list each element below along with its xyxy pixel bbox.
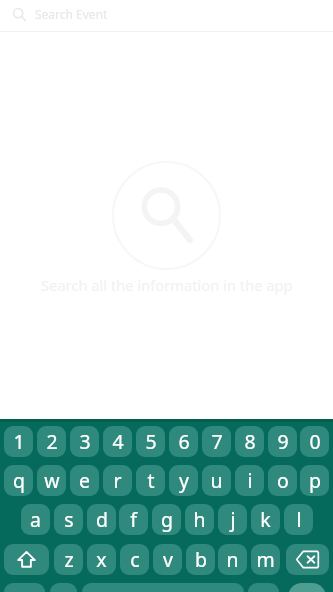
- staticText: 3: [79, 428, 91, 455]
- staticText: q: [13, 467, 25, 494]
- button[interactable]: m: [251, 544, 280, 575]
- staticText: h: [193, 506, 206, 533]
- button[interactable]: b: [186, 544, 215, 575]
- staticText: c: [130, 546, 140, 573]
- button[interactable]: u: [202, 465, 231, 496]
- staticText: p: [309, 467, 321, 494]
- button[interactable]: 8: [235, 426, 264, 457]
- staticText: y: [179, 467, 189, 494]
- button[interactable]: 6: [169, 426, 198, 457]
- staticText: t: [147, 467, 155, 494]
- staticText: 0: [309, 428, 321, 455]
- button[interactable]: Space: [82, 583, 244, 592]
- button[interactable]: l: [284, 504, 313, 535]
- button[interactable]: c: [120, 544, 149, 575]
- button[interactable]: t: [136, 465, 165, 496]
- staticText: 5: [145, 428, 157, 455]
- staticText: 9: [277, 428, 289, 455]
- staticText: 6: [178, 428, 190, 455]
- staticText: v: [163, 546, 173, 573]
- button[interactable]: y: [169, 465, 198, 496]
- staticText: Search all the information in the app: [41, 275, 293, 295]
- button[interactable]: v: [153, 544, 182, 575]
- button[interactable]: Shift: [4, 544, 49, 575]
- staticText: g: [161, 506, 173, 533]
- button[interactable]: k: [251, 504, 280, 535]
- button[interactable]: 4: [103, 426, 132, 457]
- button[interactable]: r: [103, 465, 132, 496]
- button[interactable]: g: [152, 504, 181, 535]
- staticText: m: [256, 546, 275, 573]
- staticText: s: [64, 506, 74, 533]
- staticText: z: [64, 546, 74, 573]
- staticText: u: [210, 467, 223, 494]
- staticText: i: [247, 467, 253, 494]
- button[interactable]: 3: [70, 426, 99, 457]
- button[interactable]: 5: [136, 426, 165, 457]
- staticText: a: [30, 506, 41, 533]
- button[interactable]: x: [87, 544, 116, 575]
- staticText: d: [96, 506, 108, 533]
- staticText: o: [277, 467, 289, 494]
- staticText: 7: [211, 428, 223, 455]
- button[interactable]: 9: [268, 426, 297, 457]
- button[interactable]: 0: [300, 426, 329, 457]
- staticText: l: [296, 506, 302, 533]
- staticText: w: [44, 467, 60, 494]
- button[interactable]: 1: [4, 426, 33, 457]
- button[interactable]: Search Event: [0, 0, 333, 27]
- button[interactable]: w: [37, 465, 66, 496]
- button[interactable]: e: [70, 465, 99, 496]
- button[interactable]: i: [235, 465, 264, 496]
- button[interactable]: d: [87, 504, 116, 535]
- staticText: x: [96, 546, 107, 573]
- button[interactable]: f: [119, 504, 148, 535]
- staticText: b: [195, 546, 207, 573]
- button[interactable]: a: [21, 504, 50, 535]
- staticText: 4: [112, 428, 124, 455]
- button[interactable]: Emoji: [50, 583, 77, 592]
- button[interactable]: Search: [288, 583, 326, 592]
- button[interactable]: s: [54, 504, 83, 535]
- staticText: k: [260, 506, 271, 533]
- staticText: 8: [244, 428, 256, 455]
- button[interactable]: o: [268, 465, 297, 496]
- button[interactable]: j: [218, 504, 247, 535]
- button[interactable]: 7: [202, 426, 231, 457]
- staticText: j: [230, 506, 236, 533]
- staticText: n: [226, 546, 239, 573]
- staticText: 2: [46, 428, 58, 455]
- staticText: e: [79, 467, 90, 494]
- staticText: r: [113, 467, 122, 494]
- staticText: f: [130, 506, 137, 533]
- button[interactable]: Backspace: [286, 544, 329, 575]
- button[interactable]: h: [185, 504, 214, 535]
- button[interactable]: n: [218, 544, 247, 575]
- staticText: Search Event: [35, 6, 108, 22]
- button[interactable]: q: [4, 465, 33, 496]
- button[interactable]: Symbols: [4, 583, 45, 592]
- staticText: 1: [13, 428, 25, 455]
- button[interactable]: z: [54, 544, 83, 575]
- button[interactable]: 2: [37, 426, 66, 457]
- button[interactable]: Period: [248, 583, 279, 592]
- button[interactable]: p: [300, 465, 329, 496]
